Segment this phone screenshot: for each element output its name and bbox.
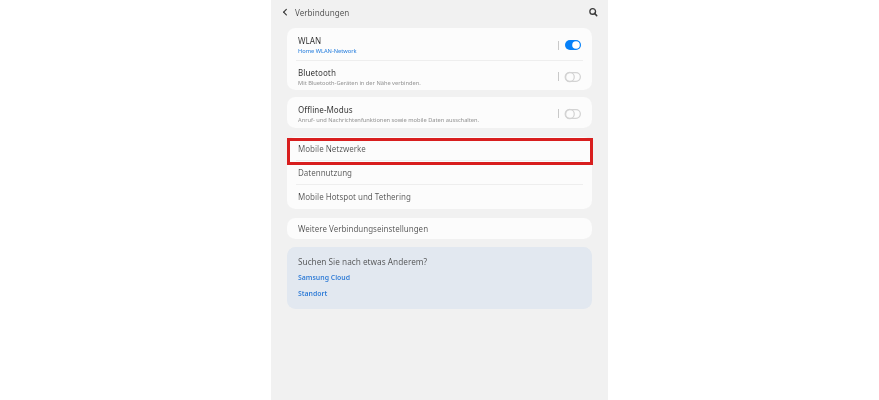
button[interactable]: Search	[584, 4, 602, 22]
staticText: Suchen Sie nach etwas Anderem?	[298, 256, 428, 267]
button[interactable]: Mobile Hotspot und Tethering	[287, 185, 592, 208]
button[interactable]: Samsung Cloud	[287, 272, 592, 283]
staticText: WLAN	[298, 35, 322, 46]
staticText: Standort	[298, 289, 328, 298]
staticText: Mit Bluetooth-Geräten in der Nähe verbin…	[298, 79, 421, 87]
button[interactable]: Back	[276, 4, 294, 22]
staticText: Home WLAN-Network	[298, 47, 357, 55]
staticText: Weitere Verbindungseinstellungen	[298, 223, 429, 234]
button[interactable]: Aus	[565, 72, 581, 82]
button[interactable]: Mobile Netzwerke	[287, 137, 592, 160]
staticText: Datennutzung	[298, 167, 353, 178]
staticText: Anruf- und Nachrichtenfunktionen sowie m…	[298, 116, 480, 124]
staticText: Samsung Cloud	[298, 273, 351, 282]
staticText: Bluetooth	[298, 67, 336, 78]
button[interactable]: Aus	[565, 109, 581, 119]
button[interactable]: Standort	[287, 288, 592, 299]
staticText: Mobile Hotspot und Tethering	[298, 191, 411, 202]
button[interactable]: Ein	[565, 40, 581, 50]
button[interactable]: Offline-Modus	[287, 97, 592, 128]
button[interactable]: Bluetooth	[287, 61, 592, 90]
button[interactable]: WLAN	[287, 28, 592, 60]
button[interactable]: Datennutzung	[287, 161, 592, 184]
staticText: Mobile Netzwerke	[298, 143, 366, 154]
staticText: Offline-Modus	[298, 104, 353, 115]
button[interactable]: Weitere Verbindungseinstellungen	[287, 218, 592, 239]
staticText: Verbindungen	[295, 7, 350, 18]
